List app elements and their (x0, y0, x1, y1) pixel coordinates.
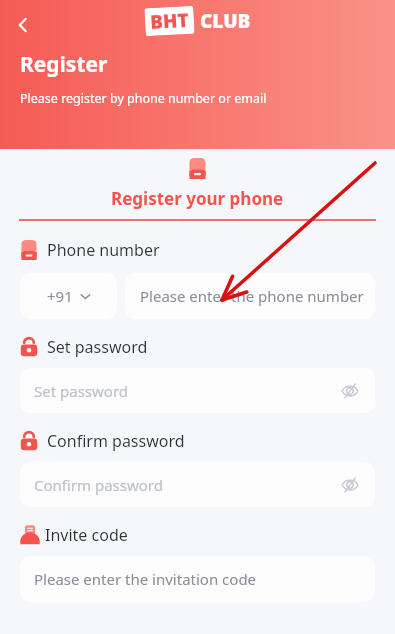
staticText: Invite code (45, 524, 128, 546)
staticText: CLUB (200, 8, 251, 34)
staticText: Register your phone (111, 187, 284, 210)
staticText: Please register by phone number or email (20, 90, 267, 107)
button[interactable]: Please enter the phone number (125, 273, 375, 319)
button[interactable]: Toggle password visibility (337, 378, 363, 404)
button[interactable]: Please enter the invitation code (20, 556, 375, 602)
button[interactable]: Confirm password (20, 462, 375, 507)
button[interactable]: Toggle password visibility (337, 472, 363, 498)
staticText: Confirm password (47, 430, 185, 452)
staticText: Set password (34, 381, 129, 401)
staticText: Please enter the invitation code (34, 569, 257, 589)
staticText: +91 (47, 286, 73, 306)
staticText: Register (20, 50, 108, 79)
staticText: Confirm password (34, 475, 163, 495)
staticText: Phone number (47, 239, 160, 261)
staticText: Please enter the phone number (140, 286, 364, 306)
staticText: BHT (149, 7, 190, 35)
button[interactable]: +91 (20, 273, 117, 319)
staticText: Set password (47, 336, 148, 358)
button[interactable]: Set password (20, 368, 375, 413)
button[interactable]: Back (6, 8, 40, 42)
